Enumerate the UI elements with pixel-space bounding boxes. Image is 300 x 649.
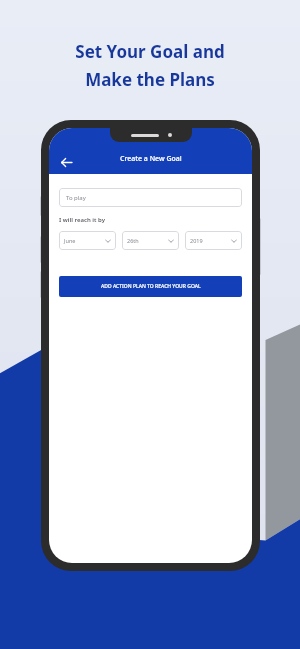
staticText: Set Your Goal and	[75, 40, 225, 63]
staticText: ADD ACTION PLAN TO REACH YOUR GOAL	[101, 283, 201, 290]
button[interactable]: Back	[55, 151, 77, 173]
button[interactable]: To play	[59, 188, 242, 207]
staticText: I will reach it by	[59, 216, 105, 224]
staticText: Make the Plans	[85, 68, 215, 91]
button[interactable]: 26th	[122, 231, 179, 250]
button[interactable]: 2019	[185, 231, 242, 250]
staticText: 2019	[190, 237, 203, 244]
button[interactable]: June	[59, 231, 116, 250]
staticText: June	[64, 237, 76, 244]
staticText: To play	[66, 194, 86, 202]
staticText: 26th	[127, 237, 139, 244]
button[interactable]: ADD ACTION PLAN TO REACH YOUR GOAL	[59, 276, 242, 297]
staticText: Create a New Goal	[120, 154, 182, 164]
